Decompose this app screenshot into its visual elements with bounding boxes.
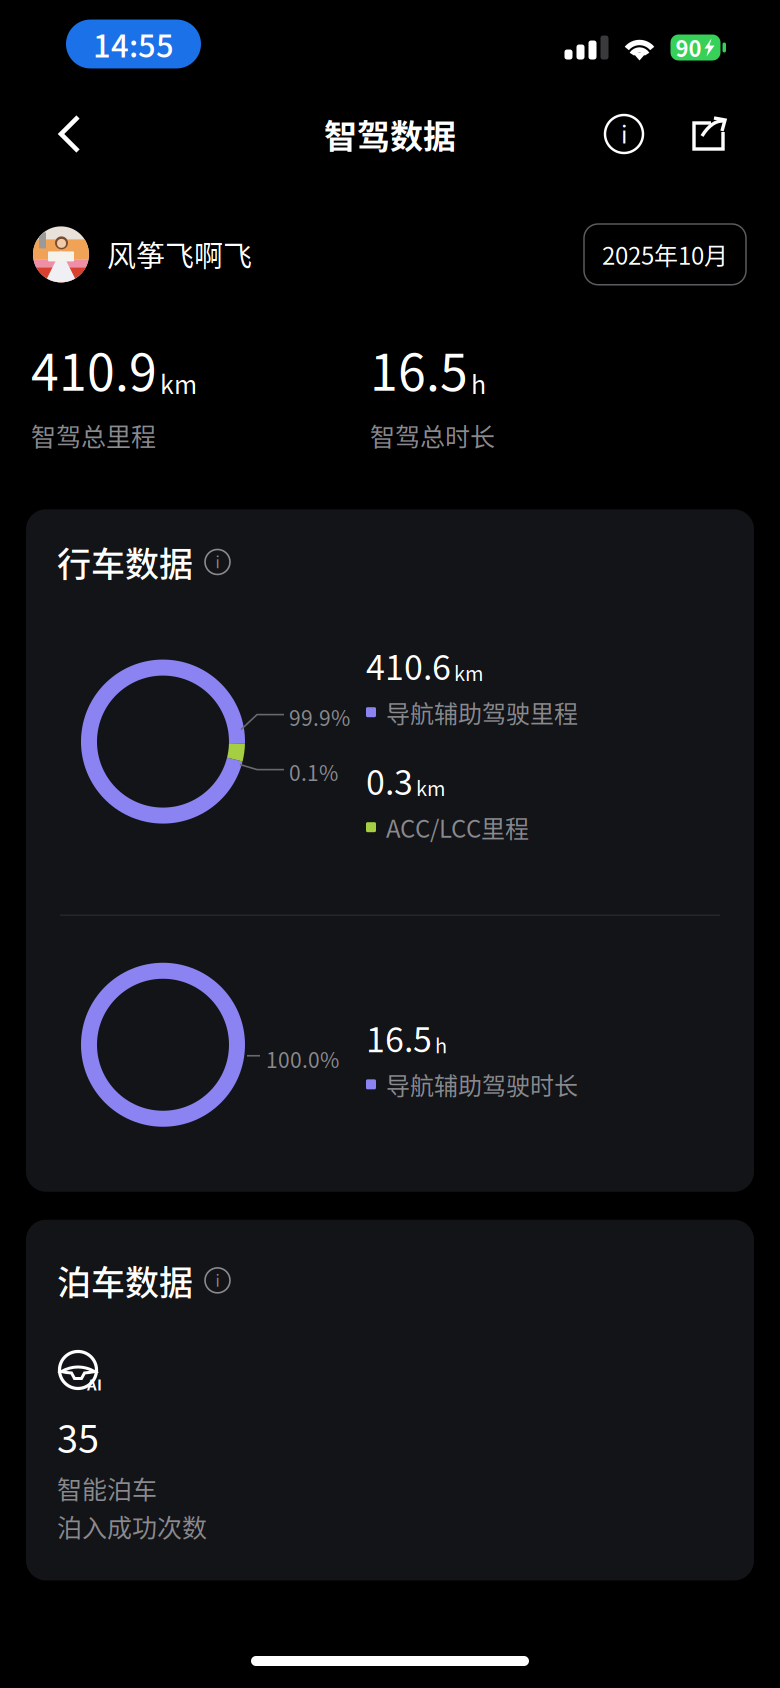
staticText: km [160, 365, 197, 401]
button[interactable]: 2025年10月 [584, 224, 746, 285]
staticText: i [215, 1269, 219, 1291]
staticText: 导航辅助驾驶里程 [386, 695, 578, 730]
staticText: 2025年10月 [602, 237, 728, 272]
staticText: h [471, 365, 486, 401]
staticText: 90 [675, 32, 701, 63]
staticText: 16.5 [366, 1013, 432, 1062]
staticText: 风筝飞啊飞 [107, 233, 252, 275]
staticText: 0.3 [366, 756, 413, 805]
button[interactable]: Share [690, 103, 780, 165]
staticText: 导航辅助驾驶时长 [386, 1067, 578, 1102]
staticText: 410.9 [31, 333, 157, 405]
staticText: h [435, 1030, 447, 1059]
staticText: 99.9% [289, 702, 350, 732]
staticText: AI [87, 1373, 102, 1395]
staticText: 智能泊车 [57, 1470, 157, 1506]
staticText: 泊车数据 [57, 1256, 193, 1305]
button[interactable]: Information [591, 103, 657, 165]
staticText: 行车数据 [57, 537, 193, 587]
staticText: km [454, 658, 484, 687]
staticText: 智驾总里程 [31, 417, 156, 453]
staticText: 智驾数据 [324, 110, 456, 158]
staticText: 35 [57, 1409, 99, 1464]
staticText: km [416, 773, 446, 802]
button[interactable]: Back [0, 101, 104, 167]
staticText: 100.0% [266, 1044, 339, 1074]
staticText: 0.1% [289, 757, 338, 787]
staticText: i [215, 550, 219, 573]
staticText: 智驾总时长 [370, 417, 495, 453]
staticText: 410.6 [366, 641, 451, 690]
staticText: 14:55 [93, 22, 174, 66]
staticText: i [621, 116, 627, 150]
staticText: 泊入成功次数 [57, 1508, 207, 1544]
staticText: ACC/LCC里程 [386, 810, 529, 845]
staticText: 16.5 [370, 333, 468, 405]
